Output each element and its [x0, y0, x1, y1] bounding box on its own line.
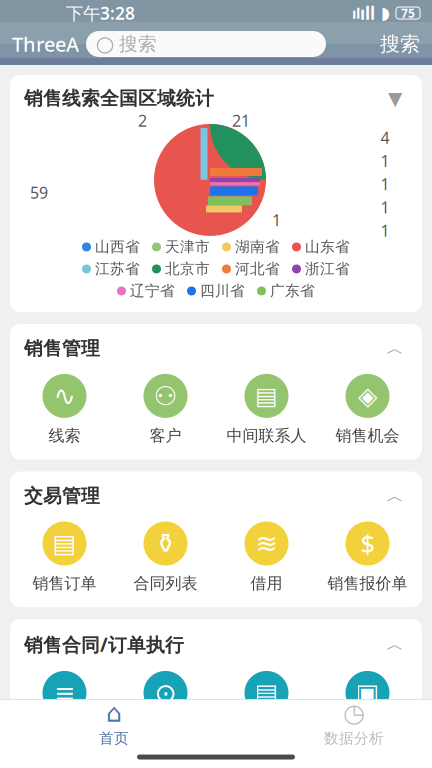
staticText: ▤ [255, 382, 278, 409]
staticText: 销售订单 [32, 573, 96, 593]
staticText: 59 [30, 182, 48, 203]
staticText: 线索 [48, 426, 80, 446]
staticText: 数据分析 [324, 729, 384, 747]
button[interactable]: ∿ [14, 374, 115, 446]
staticText: ≡ [54, 679, 75, 707]
staticText: 中间联系人 [226, 426, 306, 446]
staticText: ⚇ [153, 381, 177, 411]
staticText: 浙江省 [305, 260, 350, 278]
button[interactable]: ◈ [317, 374, 418, 446]
staticText: 销售机会 [335, 426, 399, 446]
button[interactable]: ◷ [294, 701, 414, 745]
staticText: 广东省 [270, 282, 315, 300]
staticText: ⊙ [154, 678, 176, 708]
button[interactable]: 搜索 [380, 27, 432, 61]
staticText: 河北省 [235, 260, 280, 278]
staticText: 销售报价单 [327, 573, 407, 593]
staticText: 75 [401, 5, 415, 21]
staticText: ◷ [343, 699, 365, 727]
button[interactable]: ▤ [216, 671, 317, 743]
staticText: 四川省 [200, 282, 245, 300]
staticText: ︿ [386, 485, 403, 507]
staticText: 销售发货单 [24, 723, 104, 743]
button[interactable]: $ [317, 521, 418, 593]
staticText: ıl [352, 3, 360, 23]
staticText: ◗ [381, 3, 390, 23]
staticText: 销售合同/订单执行 [24, 632, 184, 657]
staticText: ⌂ [106, 699, 122, 727]
button[interactable]: ⌂ [54, 701, 174, 745]
staticText: ▤ [254, 679, 278, 707]
staticText: 北京市 [165, 260, 210, 278]
staticText: ▼ [388, 88, 402, 109]
staticText: ≋ [255, 528, 277, 559]
staticText: 湖南省 [235, 238, 280, 256]
staticText: 销售线索全国区域统计 [24, 87, 214, 110]
staticText: ThreeA [12, 31, 79, 57]
staticText: ⚱ [154, 528, 176, 559]
staticText: 天津市 [165, 238, 210, 256]
staticText: ∿ [53, 381, 75, 411]
staticText: 山西省 [95, 238, 140, 256]
staticText: 1 [380, 220, 389, 241]
button[interactable]: 筛选 [382, 87, 408, 109]
staticText: 客户 [149, 426, 181, 446]
staticText: $ [360, 527, 374, 560]
staticText: 1 [380, 197, 389, 218]
staticText: ıll [360, 1, 375, 24]
staticText: 搜索 [380, 32, 420, 56]
staticText: 销售发票 [335, 723, 399, 743]
staticText: 交易管理 [24, 485, 100, 507]
staticText: ▤ [52, 529, 76, 558]
staticText: 借用 [250, 573, 282, 593]
button[interactable]: ⚱ [115, 521, 216, 593]
button[interactable]: ⚇ [115, 374, 216, 446]
button[interactable]: ⊙ [115, 671, 216, 743]
staticText: 2 [138, 110, 147, 131]
staticText: ▣ [355, 679, 379, 707]
staticText: 销售管理 [24, 337, 100, 360]
staticText: 1 [272, 209, 281, 230]
staticText: 4 [380, 127, 389, 148]
button[interactable]: ≡ [14, 671, 115, 743]
button[interactable]: ≋ [216, 521, 317, 593]
button[interactable]: ▤ [14, 521, 115, 593]
staticText: 合同列表 [133, 573, 197, 593]
staticText: 1 [380, 173, 389, 194]
staticText: ︿ [386, 634, 403, 655]
staticText: ◈ [358, 381, 377, 410]
staticText: 辽宁省 [130, 282, 175, 300]
button[interactable]: ▤ [216, 374, 317, 446]
staticText: 搜索 [119, 32, 157, 55]
button[interactable]: 折叠 销售合同/订单执行 [382, 633, 408, 655]
staticText: 21 [232, 110, 250, 131]
button[interactable]: ◯ [86, 31, 326, 57]
button[interactable]: 折叠 销售管理 [382, 337, 408, 359]
staticText: 首页 [99, 729, 129, 747]
staticText: 下午3:28 [66, 1, 135, 24]
button[interactable]: ThreeA [0, 27, 86, 61]
button[interactable]: ▣ [317, 671, 418, 743]
staticText: ︿ [386, 338, 403, 359]
staticText: 1 [380, 150, 389, 171]
button[interactable]: 折叠 交易管理 [382, 485, 408, 507]
staticText: 江苏省 [95, 260, 140, 278]
staticText: 山东省 [305, 238, 350, 256]
staticText: ◯ [96, 35, 114, 53]
